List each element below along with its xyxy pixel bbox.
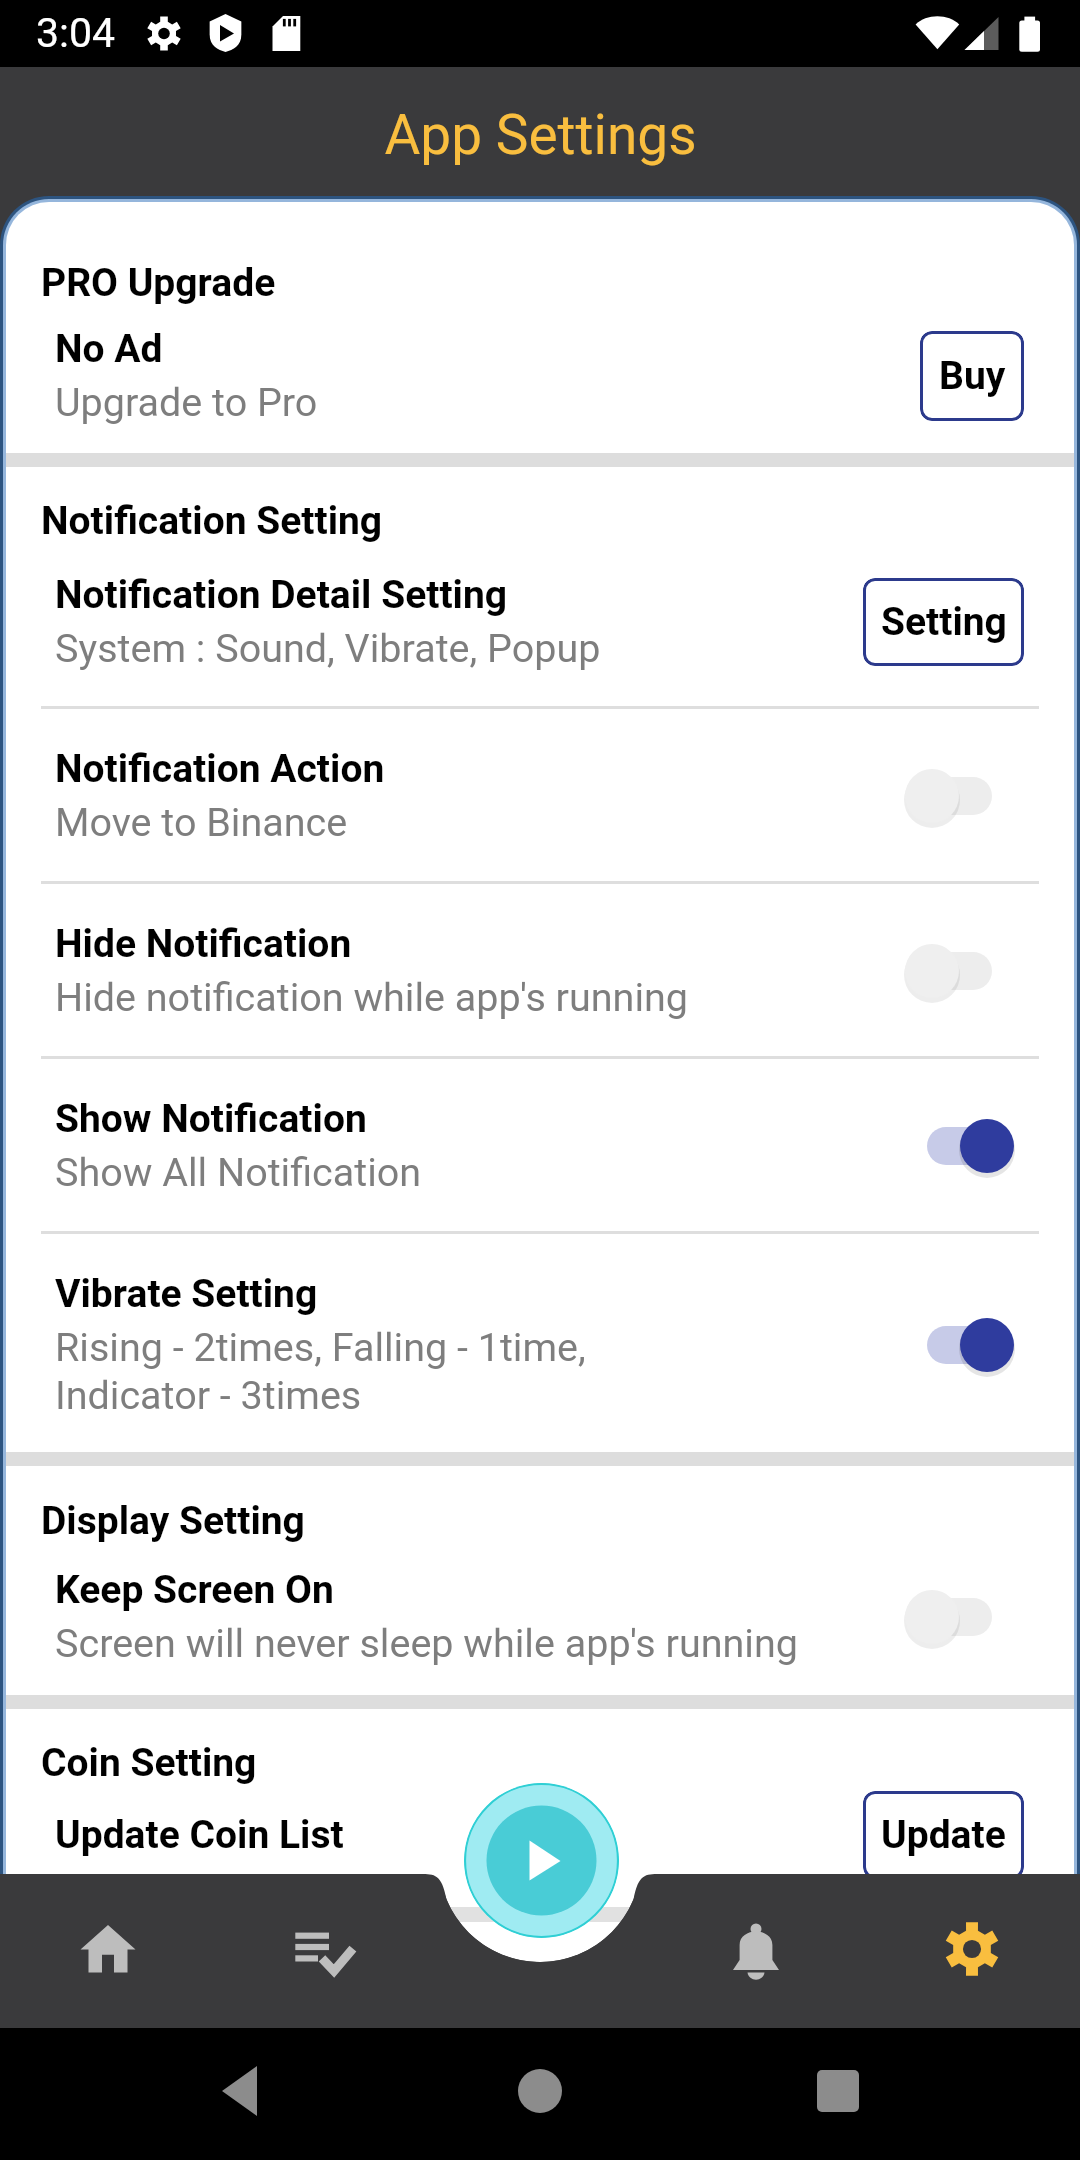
button[interactable]: Update	[863, 1791, 1024, 1879]
button[interactable]: Setting	[863, 578, 1024, 666]
button[interactable]: Notifications	[648, 1874, 864, 2028]
staticText: Notification Action	[55, 746, 385, 792]
staticText: Keep Screen On	[55, 1567, 334, 1613]
staticText: Notification Setting	[41, 498, 383, 544]
staticText: System : Sound, Vibrate, Popup	[55, 625, 601, 671]
button[interactable]: Settings	[864, 1874, 1080, 2028]
staticText: 3:04	[36, 9, 116, 57]
staticText: No Ad	[55, 326, 163, 372]
staticText: Upgrade to Pro	[55, 379, 318, 425]
staticText: Show Notification	[55, 1096, 367, 1142]
staticText: Move to Binance	[55, 799, 348, 845]
staticText: Hide notification while app's running	[55, 974, 689, 1020]
button[interactable]: Vibrate Setting	[6, 1234, 1074, 1452]
button[interactable]: Watch list	[216, 1874, 432, 2028]
button[interactable]: Notification Action	[6, 709, 1074, 881]
staticText: Display Setting	[41, 1498, 305, 1544]
staticText: Screen will never sleep while app's runn…	[55, 1620, 798, 1666]
staticText: App Settings	[384, 103, 697, 167]
staticText: Hide Notification	[55, 921, 352, 967]
staticText: Notification Detail Setting	[55, 572, 508, 618]
staticText: Show All Notification	[55, 1149, 422, 1195]
button[interactable]: Buy	[920, 331, 1024, 421]
staticText: Setting	[881, 599, 1007, 645]
staticText: PRO Upgrade	[41, 260, 276, 306]
staticText: Update	[881, 1812, 1006, 1858]
staticText: Rising - 2times, Falling - 1time, Indica…	[55, 1324, 586, 1419]
button[interactable]: Show Notification	[6, 1059, 1074, 1231]
button[interactable]: Start service	[464, 1783, 619, 1938]
button[interactable]: Hide Notification	[6, 884, 1074, 1056]
staticText: Update Coin List	[55, 1812, 344, 1858]
staticText: Coin Setting	[41, 1740, 257, 1786]
button[interactable]: Home	[0, 1874, 216, 2028]
staticText: Vibrate Setting	[55, 1271, 318, 1317]
staticText: Buy	[939, 353, 1006, 399]
